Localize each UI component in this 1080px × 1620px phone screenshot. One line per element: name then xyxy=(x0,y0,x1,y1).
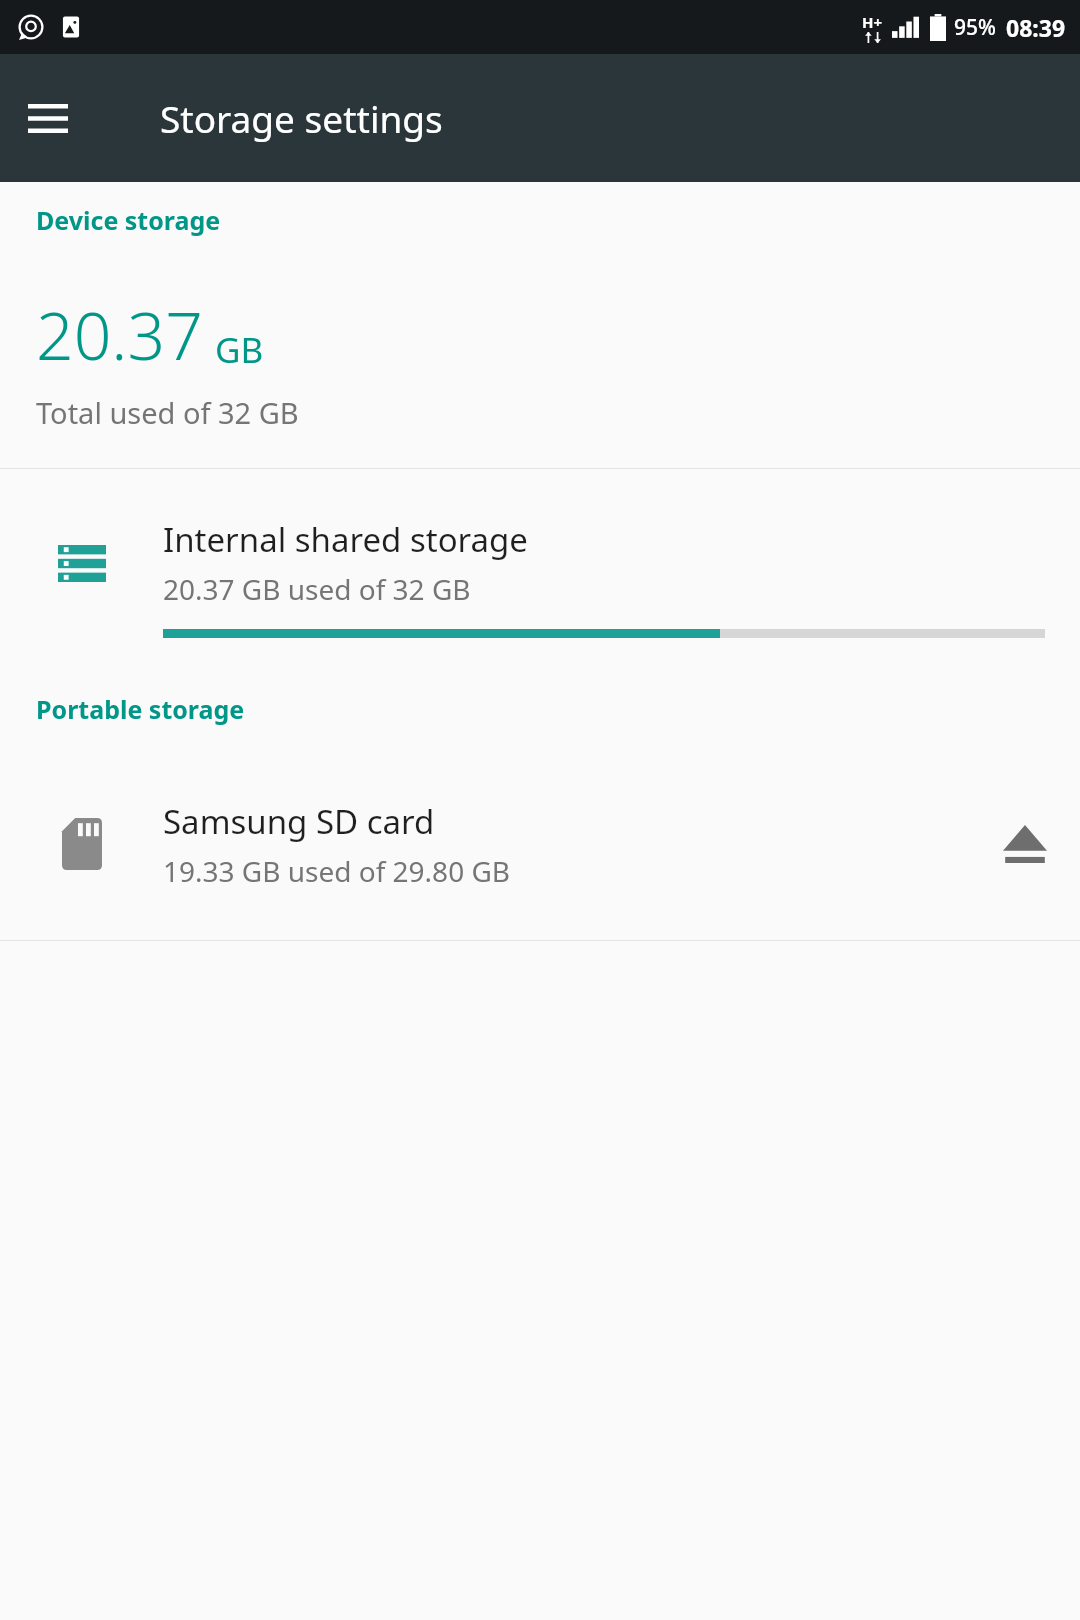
staticText: Internal shared storage xyxy=(163,517,528,562)
button[interactable]: Samsung SD card xyxy=(0,774,1080,914)
staticText: 08:39 xyxy=(1006,12,1066,43)
button[interactable]: Eject SD card xyxy=(970,796,1080,892)
staticText: Device storage xyxy=(36,203,221,237)
staticText: Samsung SD card xyxy=(163,799,435,844)
staticText: 19.33 GB used of 29.80 GB xyxy=(163,852,511,890)
staticText: 20.37 GB used of 32 GB xyxy=(163,570,471,608)
staticText: 95% xyxy=(954,13,996,42)
staticText: Storage settings xyxy=(160,93,443,143)
button[interactable]: Open navigation menu xyxy=(20,90,76,146)
staticText: Portable storage xyxy=(36,692,245,726)
staticText: 20.37 xyxy=(36,289,203,379)
staticText: Total used of 32 GB xyxy=(36,393,299,432)
button[interactable]: Internal shared storage xyxy=(0,469,1080,664)
staticText: H+ xyxy=(862,12,883,32)
staticText: GB xyxy=(215,326,264,374)
